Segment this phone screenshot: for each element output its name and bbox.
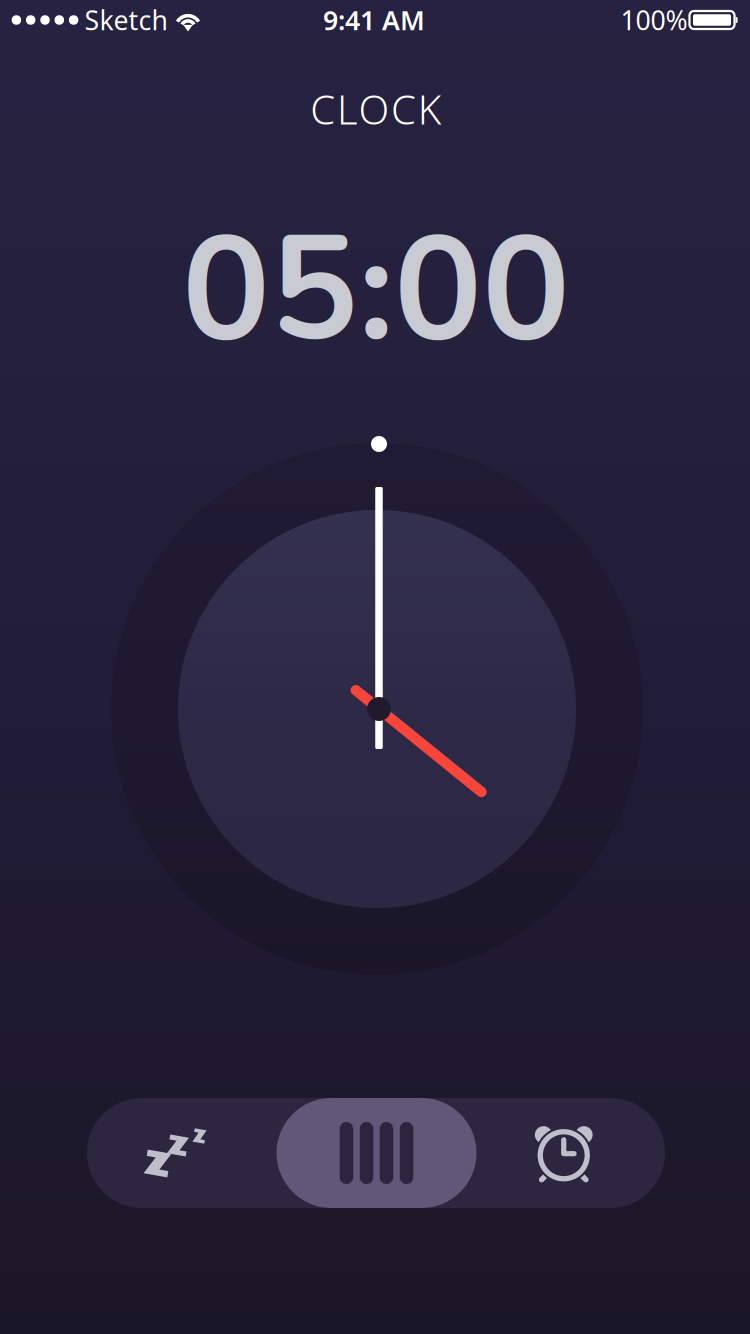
staticText: 9:41 AM [323, 2, 425, 38]
button[interactable]: Timer [276, 1098, 476, 1208]
staticText: 100% [620, 2, 687, 38]
button[interactable]: Alarm [475, 1098, 665, 1208]
staticText: Sketch [84, 2, 167, 38]
button[interactable]: Bedtime [87, 1098, 277, 1208]
staticText: 05:00 [182, 190, 570, 390]
staticText: CLOCK [310, 82, 442, 135]
